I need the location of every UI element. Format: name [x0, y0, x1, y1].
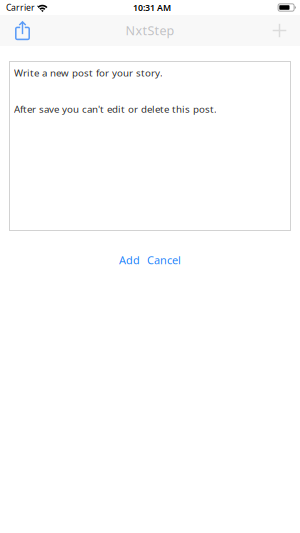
staticText: NxtStep: [125, 22, 174, 39]
button[interactable]: Add post: [264, 15, 294, 46]
button[interactable]: Share: [7, 15, 37, 46]
staticText: Write a new post for your story.: [14, 66, 163, 79]
staticText: After save you can't edit or delete this…: [14, 102, 217, 116]
staticText: Carrier: [6, 2, 35, 13]
button[interactable]: Add: [119, 249, 140, 270]
button[interactable]: Cancel: [147, 249, 181, 270]
staticText: Cancel: [147, 253, 181, 267]
staticText: 10:31 AM: [133, 1, 171, 13]
staticText: Add: [119, 253, 140, 267]
button[interactable]: Write a new post for your story.: [9, 61, 290, 230]
